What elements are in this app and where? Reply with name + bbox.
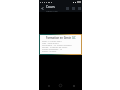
button[interactable]: Action xyxy=(64,5,70,11)
button[interactable]: Formation en Genie xyxy=(39,34,82,55)
staticText: Genie Civil xyxy=(46,9,58,12)
button[interactable]: Home xyxy=(57,82,64,89)
button[interactable]: Action xyxy=(70,5,76,11)
button[interactable]: Navigate up xyxy=(40,6,45,11)
staticText: Cours xyxy=(46,5,55,9)
staticText: Formation en Genie xyxy=(46,36,71,40)
button[interactable]: Action xyxy=(76,5,82,11)
staticText: Date : 12 Mars 2024 Lieu : Salle B-204 F… xyxy=(42,40,72,53)
button[interactable]: Recent apps xyxy=(70,82,77,89)
button[interactable]: Back xyxy=(45,82,52,89)
staticText: GC xyxy=(72,36,76,40)
